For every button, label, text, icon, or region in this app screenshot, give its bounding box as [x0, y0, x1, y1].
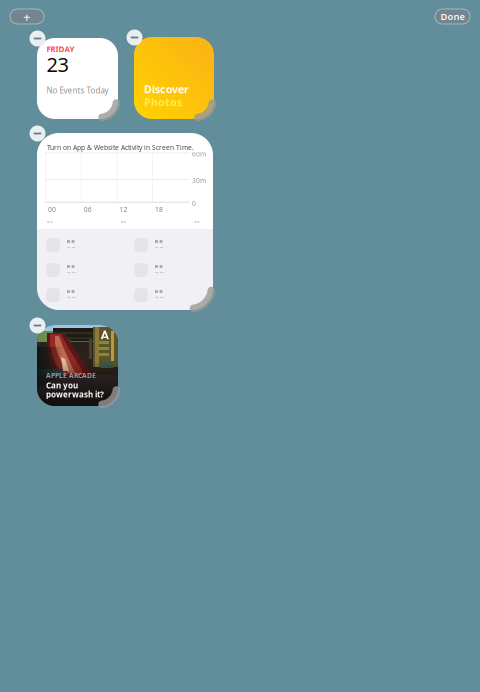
button[interactable]: Done — [435, 9, 470, 24]
staticText: 0 — [192, 199, 196, 208]
staticText: Can you — [46, 380, 78, 391]
button[interactable]: FRIDAY — [37, 38, 118, 119]
staticText: -- — [194, 216, 200, 227]
button[interactable]: Remove widget — [29, 317, 45, 333]
staticText: -- — [47, 216, 53, 227]
staticText: APPLE ARCADE — [46, 371, 96, 380]
button[interactable]: Discover — [134, 37, 214, 119]
button[interactable]: Remove widget — [29, 125, 45, 141]
button[interactable]: APPLE ARCADE — [37, 325, 118, 406]
staticText: 12 — [119, 205, 127, 214]
staticText: Discover — [144, 82, 189, 96]
button[interactable]: Turn on App & Website Activity in Screen… — [37, 133, 213, 310]
staticText: No Events Today — [46, 85, 108, 96]
staticText: + — [23, 8, 31, 25]
button[interactable]: Add widget — [10, 9, 44, 24]
staticText: 23 — [46, 51, 68, 78]
button[interactable]: Resize widget — [167, 264, 215, 312]
staticText: -- — [120, 216, 126, 227]
staticText: 30m — [192, 176, 206, 185]
button[interactable]: Remove widget — [126, 29, 142, 45]
button[interactable]: Resize widget — [80, 81, 120, 121]
staticText: 18 — [155, 205, 163, 214]
staticText: Turn on App & Website Activity in Screen… — [47, 143, 194, 152]
staticText: 00 — [48, 205, 56, 214]
button[interactable]: Resize widget — [80, 368, 120, 408]
button[interactable]: Remove widget — [29, 30, 45, 46]
staticText: Photos — [144, 95, 182, 109]
staticText: 06 — [84, 205, 92, 214]
staticText: 60m — [192, 149, 206, 158]
button[interactable]: Resize widget — [176, 81, 216, 121]
staticText: FRIDAY — [46, 44, 74, 55]
staticText: powerwash it? — [46, 389, 104, 400]
staticText: Done — [440, 10, 464, 23]
